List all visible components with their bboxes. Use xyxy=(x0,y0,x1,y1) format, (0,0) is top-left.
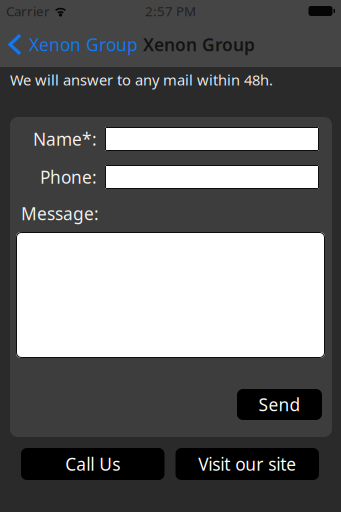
staticText: Xenon Group xyxy=(143,33,255,56)
staticText: 2:57 PM xyxy=(145,2,196,20)
button[interactable]: Call Us xyxy=(21,448,164,480)
staticText: Carrier xyxy=(6,2,50,20)
staticText: Visit our site xyxy=(198,452,296,475)
staticText: Call Us xyxy=(65,452,120,475)
staticText: Send xyxy=(258,393,300,416)
staticText: Name*: xyxy=(33,127,97,150)
button[interactable]: Xenon Group xyxy=(0,22,144,67)
button[interactable]: Send xyxy=(237,389,322,420)
staticText: Message: xyxy=(21,202,99,225)
button[interactable]: Visit our site xyxy=(175,448,319,480)
staticText: Phone: xyxy=(40,165,97,188)
staticText: We will answer to any mail within 48h. xyxy=(10,70,273,89)
staticText: Xenon Group xyxy=(29,33,138,56)
